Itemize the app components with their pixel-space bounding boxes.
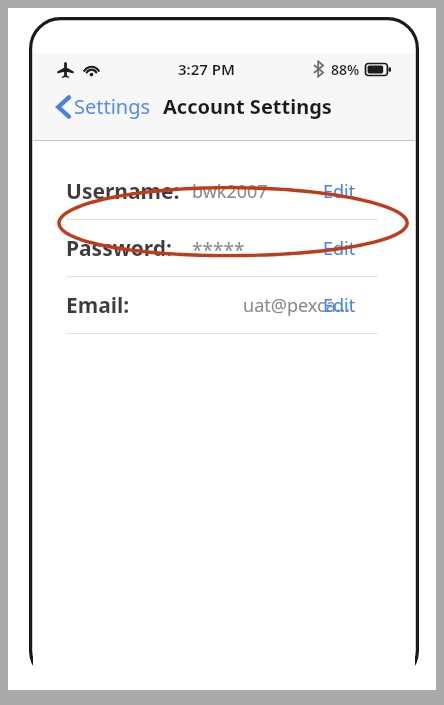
staticText: Email: [66,291,130,320]
staticText: Account Settings [163,93,332,120]
staticText: Edit [323,236,356,261]
staticText: Edit [323,293,356,318]
staticText: ***** [192,237,245,263]
staticText: bwk2007 [192,179,268,204]
staticText: Edit [323,179,356,204]
staticText: Settings [74,93,151,120]
button[interactable]: Edit [321,230,358,267]
staticText: Password: [66,234,172,263]
button[interactable]: Edit [321,173,358,210]
staticText: uat@pexca… [183,293,350,318]
button[interactable]: Edit [321,287,358,324]
staticText: Username: [66,177,180,206]
button[interactable]: Username: [33,163,415,219]
staticText: 88% [331,60,360,79]
button[interactable]: Password: [33,220,415,276]
button[interactable]: Email: [33,277,415,333]
staticText: 3:27 PM [178,59,235,79]
button[interactable]: Settings [57,93,155,120]
